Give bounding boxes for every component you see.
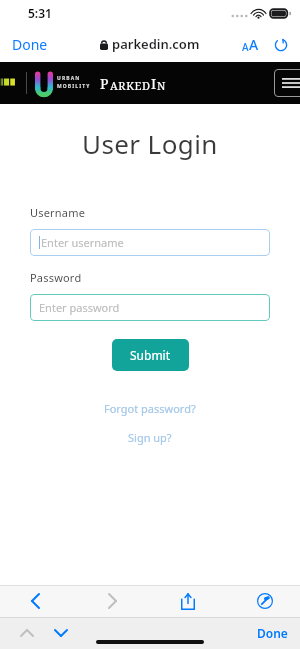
button[interactable]: Done bbox=[0, 29, 60, 60]
staticText: ARKED bbox=[110, 78, 151, 93]
staticText: N bbox=[157, 78, 166, 93]
button[interactable]: Submit bbox=[112, 339, 189, 371]
staticText: Password bbox=[30, 270, 82, 285]
staticText: Username bbox=[30, 205, 86, 220]
staticText: Submit bbox=[130, 347, 171, 363]
button[interactable]: Forward bbox=[91, 586, 133, 616]
staticText: Done bbox=[12, 35, 48, 54]
staticText: I bbox=[151, 74, 157, 93]
staticText: Forgot password? bbox=[104, 401, 196, 416]
staticText: Sign up? bbox=[128, 430, 172, 445]
staticText: 5:31 bbox=[28, 5, 52, 21]
staticText: A bbox=[249, 35, 259, 54]
button[interactable]: Tabs bbox=[244, 586, 286, 616]
staticText: A bbox=[242, 40, 249, 54]
button[interactable]: Enter password bbox=[30, 294, 270, 321]
button[interactable]: Sign up? bbox=[124, 426, 176, 449]
button[interactable]: Share bbox=[167, 586, 209, 616]
staticText: Enter username bbox=[41, 235, 124, 250]
staticText: MOBILITY bbox=[57, 83, 91, 90]
staticText: Enter password bbox=[39, 300, 120, 315]
button[interactable]: Back bbox=[14, 586, 56, 616]
staticText: User Login bbox=[82, 126, 218, 161]
button[interactable]: Done bbox=[245, 620, 300, 646]
button[interactable]: Forgot password? bbox=[100, 397, 200, 420]
staticText: P bbox=[100, 74, 110, 93]
staticText: Done bbox=[257, 625, 288, 641]
button[interactable]: Menu bbox=[274, 69, 300, 97]
button[interactable]: Reload bbox=[270, 34, 292, 56]
button[interactable]: Enter username bbox=[30, 229, 270, 256]
staticText: URBAN bbox=[57, 75, 81, 82]
button[interactable]: Text size bbox=[237, 31, 264, 58]
button[interactable]: Next field bbox=[44, 620, 78, 646]
staticText: parkedin.com bbox=[112, 35, 200, 53]
button[interactable]: Previous field bbox=[10, 620, 44, 646]
